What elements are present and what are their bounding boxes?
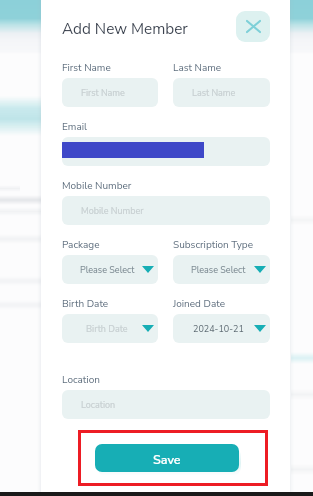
button[interactable]: Birth Date	[62, 314, 158, 343]
button[interactable]: Please Select	[62, 255, 158, 284]
staticText: 2024-10-21	[193, 323, 244, 335]
button[interactable]: Location	[62, 390, 270, 419]
staticText: Email	[62, 120, 87, 134]
staticText: Location	[62, 373, 100, 387]
staticText: Subscription Type	[173, 238, 253, 252]
staticText: Add New Member	[62, 19, 188, 40]
staticText: Location	[81, 399, 116, 411]
button[interactable]: Save	[95, 444, 239, 472]
staticText: Please Select	[191, 264, 246, 276]
staticText: Birth Date	[62, 297, 109, 311]
staticText: First Name	[62, 61, 111, 75]
staticText: Please Select	[80, 264, 135, 276]
staticText: Mobile Number	[81, 205, 144, 217]
staticText: First Name	[81, 87, 125, 99]
button[interactable]: Please Select	[173, 255, 270, 284]
staticText: Save	[153, 451, 181, 468]
staticText: Mobile Number	[62, 179, 132, 193]
staticText: Last Name	[173, 61, 222, 75]
button[interactable]: First Name	[62, 78, 158, 107]
button[interactable]: Last Name	[173, 78, 270, 107]
staticText: Joined Date	[173, 297, 226, 311]
staticText: Package	[62, 238, 100, 252]
button[interactable]: Close	[236, 11, 270, 42]
staticText: Last Name	[192, 87, 236, 99]
button[interactable]: 2024-10-21	[173, 314, 270, 343]
button[interactable]	[62, 137, 270, 166]
staticText: Birth Date	[86, 323, 128, 335]
button[interactable]: Mobile Number	[62, 196, 270, 225]
